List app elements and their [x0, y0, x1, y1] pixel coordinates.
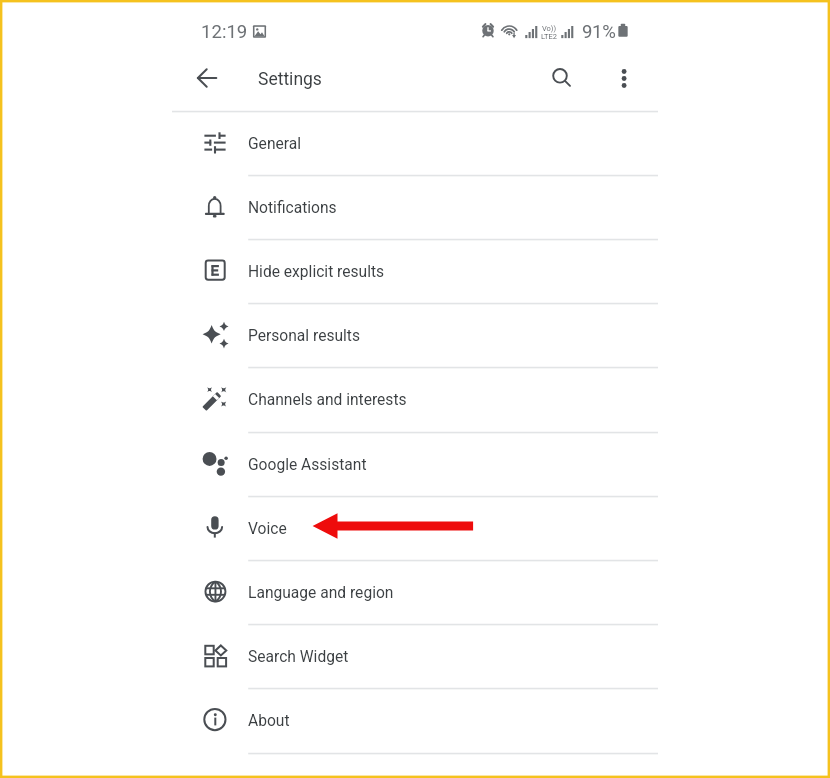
button[interactable]: Search Widget	[171, 624, 658, 688]
staticText: Notifications	[248, 199, 337, 217]
staticText: 12:19	[201, 21, 248, 43]
staticText: 91%	[582, 21, 616, 43]
staticText: Settings	[258, 69, 322, 90]
button[interactable]: Voice	[171, 496, 658, 560]
staticText: Voice	[248, 520, 287, 538]
button[interactable]: About	[171, 688, 658, 752]
staticText: Search Widget	[248, 648, 349, 666]
staticText: Language and region	[248, 584, 394, 602]
staticText: Personal results	[248, 327, 360, 345]
button[interactable]: General	[171, 111, 658, 175]
button[interactable]: Navigate up	[186, 58, 226, 98]
staticText: Hide explicit results	[248, 263, 385, 281]
staticText: About	[248, 712, 290, 730]
button[interactable]: Language and region	[171, 560, 658, 624]
button[interactable]: Hide explicit results	[171, 239, 658, 303]
staticText: General	[248, 135, 302, 153]
button[interactable]: Channels and interests	[171, 367, 658, 431]
staticText: Vo)) LTE2	[541, 24, 557, 41]
button[interactable]: Notifications	[171, 175, 658, 239]
staticText: Google Assistant	[248, 456, 367, 474]
button[interactable]: Search	[542, 58, 582, 98]
button[interactable]: More options	[604, 58, 644, 98]
button[interactable]: Google Assistant	[171, 432, 658, 496]
staticText: Channels and interests	[248, 391, 407, 409]
button[interactable]: Personal results	[171, 303, 658, 367]
